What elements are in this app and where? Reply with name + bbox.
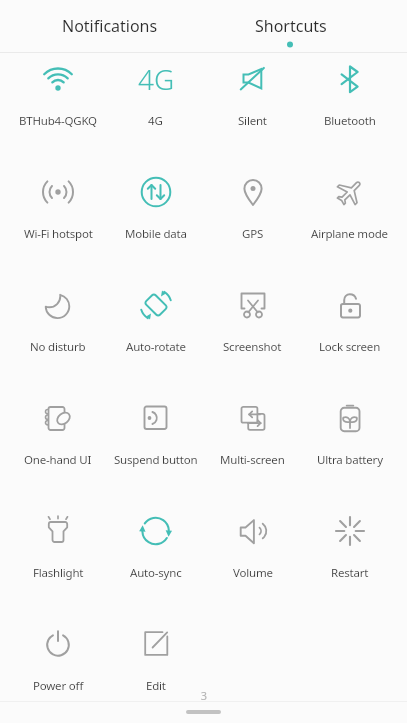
staticText: Power off	[33, 678, 84, 694]
staticText: Airplane mode	[311, 226, 388, 242]
staticText: Shortcuts	[255, 15, 327, 37]
staticText: No disturb	[30, 339, 86, 355]
button[interactable]: Ultra battery	[301, 392, 398, 505]
staticText: Edit	[146, 678, 166, 694]
button[interactable]: Bluetooth	[301, 53, 398, 166]
button[interactable]: No disturb	[9, 279, 107, 392]
staticText: 3	[196, 688, 212, 703]
button[interactable]: One-hand UI	[9, 392, 107, 505]
staticText: 4G	[148, 113, 163, 129]
button[interactable]: Edit	[107, 618, 204, 723]
staticText: Notifications	[62, 15, 158, 37]
button[interactable]: Flashlight	[9, 505, 107, 618]
button[interactable]: Restart	[301, 505, 398, 618]
button[interactable]: Screenshot	[204, 279, 301, 392]
staticText: Restart	[331, 565, 369, 581]
staticText: BTHub4-QGKQ	[19, 113, 97, 129]
button[interactable]: Mobile data	[107, 166, 204, 279]
button[interactable]: Lock screen	[301, 279, 398, 392]
button[interactable]: 4G	[107, 53, 204, 166]
staticText: Bluetooth	[324, 113, 376, 129]
staticText: Multi-screen	[220, 452, 285, 468]
button[interactable]: Multi-screen	[204, 392, 301, 505]
button[interactable]: BTHub4-QGKQ	[9, 53, 107, 166]
button[interactable]: Notifications	[20, 0, 200, 52]
staticText: Wi-Fi hotspot	[24, 226, 93, 242]
button[interactable]: Shortcuts	[201, 0, 381, 52]
staticText: Screenshot	[223, 339, 282, 355]
staticText: GPS	[242, 226, 264, 242]
staticText: Mobile data	[125, 226, 187, 242]
staticText: Ultra battery	[317, 452, 383, 468]
button[interactable]: Silent	[204, 53, 301, 166]
staticText: One-hand UI	[24, 452, 92, 468]
staticText: Flashlight	[33, 565, 84, 581]
staticText: Suspend button	[114, 452, 198, 468]
staticText: Lock screen	[319, 339, 381, 355]
staticText: Silent	[238, 113, 267, 129]
button[interactable]: GPS	[204, 166, 301, 279]
staticText: Auto-sync	[130, 565, 182, 581]
button[interactable]: Volume	[204, 505, 301, 618]
staticText: Auto-rotate	[126, 339, 186, 355]
button[interactable]: Suspend button	[107, 392, 204, 505]
staticText: Volume	[233, 565, 273, 581]
button[interactable]: Auto-sync	[107, 505, 204, 618]
button[interactable]: Auto-rotate	[107, 279, 204, 392]
button[interactable]: Power off	[9, 618, 107, 723]
button[interactable]: Airplane mode	[301, 166, 398, 279]
button[interactable]: Wi-Fi hotspot	[9, 166, 107, 279]
staticText: 4G	[138, 60, 175, 98]
